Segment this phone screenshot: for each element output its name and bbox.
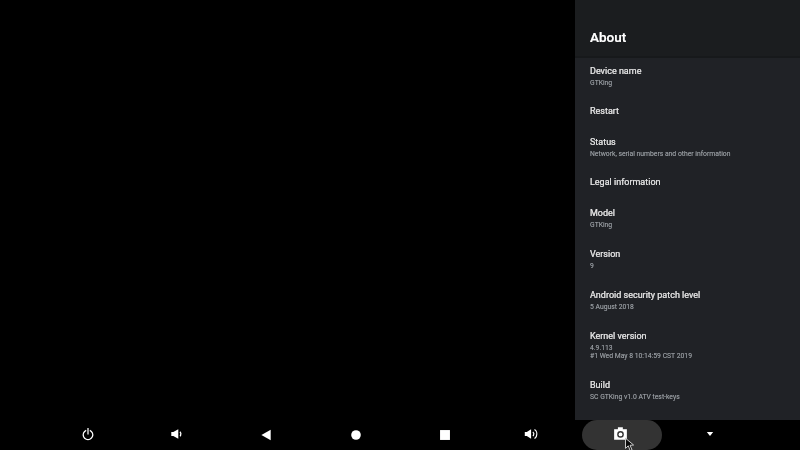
- button[interactable]: Kernel version: [575, 325, 800, 360]
- staticText: #1 Wed May 8 10:14:59 CST 2019: [590, 352, 692, 360]
- button[interactable]: Status: [575, 131, 800, 158]
- staticText: GTKing: [590, 79, 613, 87]
- staticText: 4.9.113: [590, 344, 613, 352]
- staticText: Android security patch level: [590, 290, 701, 301]
- staticText: Legal information: [590, 177, 661, 188]
- button[interactable]: Power: [73, 419, 103, 449]
- staticText: GTKing: [590, 221, 613, 229]
- staticText: Network, serial numbers and other inform…: [590, 150, 731, 158]
- button[interactable]: Model: [575, 202, 800, 229]
- button[interactable]: Volume up: [515, 419, 545, 449]
- staticText: Model: [590, 208, 616, 219]
- button[interactable]: Screenshot: [582, 420, 662, 450]
- staticText: 9: [590, 262, 594, 270]
- staticText: Status: [590, 137, 616, 148]
- button[interactable]: Device name: [575, 60, 800, 87]
- staticText: Restart: [590, 106, 620, 117]
- button[interactable]: Restart: [575, 100, 800, 127]
- staticText: Device name: [590, 66, 642, 77]
- button[interactable]: Version: [575, 243, 800, 270]
- staticText: 5 August 2018: [590, 303, 634, 311]
- staticText: About: [590, 29, 627, 45]
- button[interactable]: Build: [575, 374, 800, 401]
- staticText: SC GTKing v1.0 ATV test-keys: [590, 393, 680, 401]
- staticText: Version: [590, 249, 621, 260]
- button[interactable]: Volume down: [161, 419, 191, 449]
- button[interactable]: More options: [695, 419, 725, 449]
- staticText: Kernel version: [590, 331, 647, 342]
- button[interactable]: Android security patch level: [575, 284, 800, 311]
- button[interactable]: Legal information: [575, 171, 800, 198]
- button[interactable]: Home: [341, 420, 371, 450]
- staticText: Build: [590, 380, 611, 391]
- button[interactable]: Back: [251, 420, 281, 450]
- button[interactable]: Recents: [430, 420, 460, 450]
